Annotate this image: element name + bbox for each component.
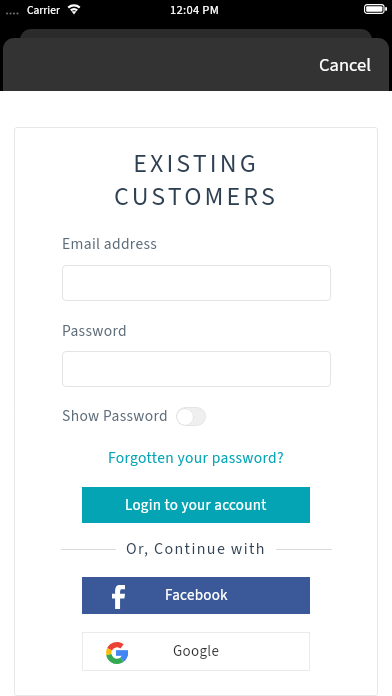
button[interactable]: Login to your account (82, 487, 310, 523)
staticText: Login to your account (125, 495, 267, 516)
staticText: Password (62, 320, 128, 342)
staticText: Forgotten your password? (108, 447, 285, 469)
staticText: Or, Continue with (126, 538, 266, 561)
staticText: Show Password (62, 405, 169, 427)
button[interactable]: Google (82, 632, 310, 671)
staticText: Email address (62, 233, 158, 255)
button[interactable]: Cancel (297, 43, 389, 87)
staticText: CUSTOMERS (0, 178, 392, 215)
staticText: EXISTING (0, 145, 392, 182)
staticText: Cancel (319, 52, 371, 78)
button[interactable]: Show password toggle (176, 407, 206, 426)
staticText: Facebook (165, 585, 228, 606)
staticText: 12:04 PM (170, 1, 220, 19)
button[interactable]: Forgotten your password? (0, 447, 392, 469)
staticText: Google (173, 641, 220, 662)
button[interactable]: Email address field (62, 265, 331, 301)
button[interactable]: Password field (62, 351, 331, 387)
button[interactable]: Facebook (82, 577, 310, 614)
staticText: Carrier (27, 2, 60, 18)
